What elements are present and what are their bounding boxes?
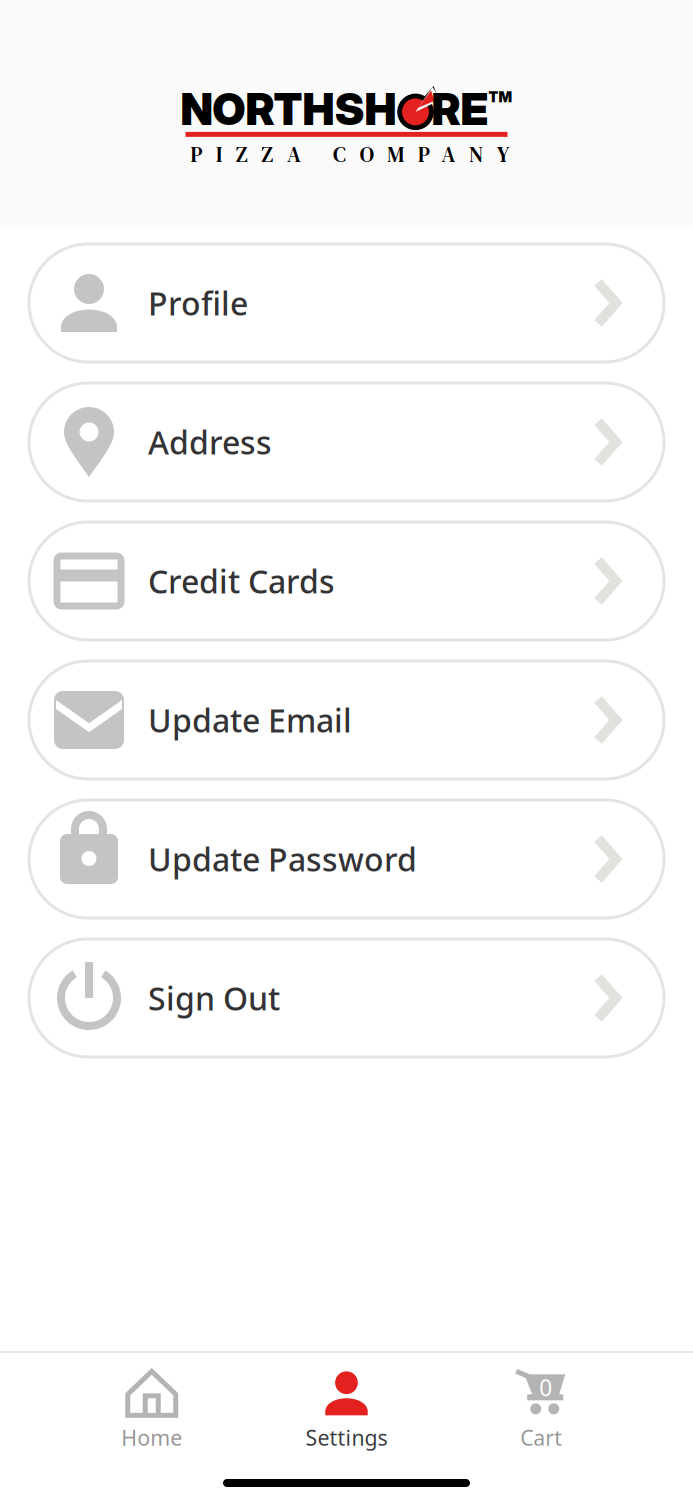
button[interactable]: Credit Cards — [29, 522, 664, 640]
staticText: PIZZA COMPANY — [190, 140, 510, 169]
staticText: Update Email — [148, 699, 352, 741]
staticText: RE — [431, 82, 488, 135]
button[interactable]: Profile — [29, 244, 664, 362]
button[interactable]: Update Password — [29, 800, 664, 918]
button[interactable]: Sign Out — [29, 939, 664, 1057]
button[interactable]: Update Email — [29, 661, 664, 779]
staticText: Credit Cards — [148, 560, 335, 602]
staticText: Address — [148, 421, 272, 463]
staticText: Settings — [305, 1423, 387, 1452]
button[interactable]: Settings — [286, 1353, 406, 1456]
staticText: Profile — [148, 282, 248, 324]
button[interactable]: Address — [29, 383, 664, 501]
button[interactable]: 0 — [481, 1353, 601, 1456]
staticText: Home — [121, 1423, 182, 1452]
staticText: Sign Out — [148, 977, 280, 1019]
staticText: TM — [488, 88, 512, 106]
button[interactable]: Home — [92, 1353, 212, 1456]
staticText: NORTHSH — [180, 82, 396, 135]
staticText: Update Password — [148, 838, 417, 880]
staticText: 0 — [539, 1372, 552, 1402]
staticText: Cart — [520, 1423, 562, 1452]
